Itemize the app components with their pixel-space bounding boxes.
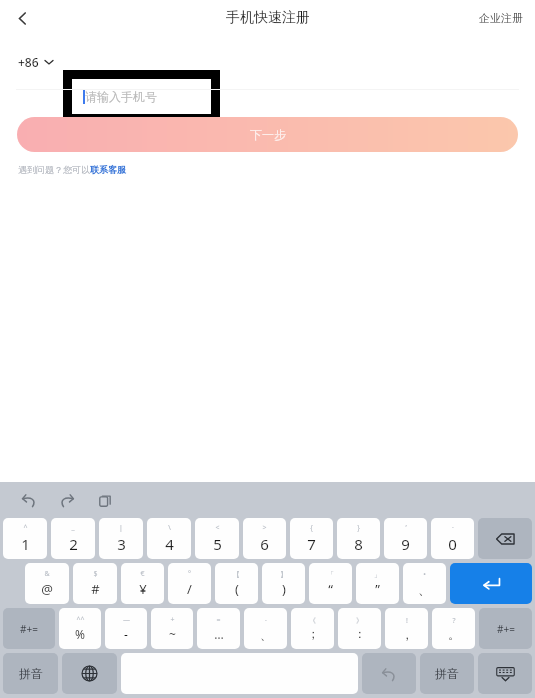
button[interactable]: 「 — [309, 563, 352, 604]
staticText: 7 — [307, 534, 316, 554]
button[interactable]: +86 — [14, 48, 58, 76]
staticText: — — [123, 615, 130, 625]
button[interactable]: ^ — [3, 518, 47, 559]
staticText: \ — [168, 523, 171, 533]
button[interactable]: • — [403, 563, 446, 604]
button[interactable]: ^^ — [59, 608, 101, 649]
button[interactable]: Undo — [14, 485, 44, 515]
button[interactable]: 下一步 — [17, 117, 518, 152]
button[interactable]: { — [290, 518, 333, 559]
button[interactable]: 【 — [215, 563, 258, 604]
button[interactable]: 拼音 — [3, 653, 58, 694]
staticText: 企业注册 — [479, 11, 523, 25]
staticText: #+= — [497, 622, 515, 636]
staticText: 、 — [260, 627, 272, 642]
staticText: 「 — [327, 570, 334, 579]
staticText: & — [44, 569, 50, 579]
button[interactable]: _ — [51, 518, 95, 559]
staticText: 下一步 — [250, 127, 286, 142]
staticText: } — [357, 523, 360, 533]
staticText: 请输入手机号 — [85, 89, 157, 104]
staticText: ! — [406, 616, 408, 626]
button[interactable]: Backspace — [478, 518, 532, 559]
staticText: 联系客服 — [90, 164, 126, 175]
staticText: ； — [307, 626, 319, 641]
staticText: = — [216, 615, 221, 625]
button[interactable]: & — [25, 563, 69, 604]
button[interactable]: 《 — [291, 608, 334, 649]
button[interactable]: ° — [168, 563, 211, 604]
button[interactable]: Switch language — [62, 653, 117, 694]
staticText: < — [215, 523, 220, 533]
staticText: ^^ — [76, 615, 85, 625]
staticText: 0 — [448, 534, 457, 554]
staticText: 2 — [69, 534, 78, 554]
staticText: 9 — [401, 534, 410, 554]
staticText: +86 — [18, 54, 39, 70]
staticText: 」 — [374, 570, 381, 579]
button[interactable]: · — [244, 608, 287, 649]
staticText: { — [310, 523, 313, 533]
button[interactable]: #+= — [479, 608, 532, 649]
staticText: $ — [93, 569, 98, 579]
button[interactable]: Undo — [362, 653, 416, 694]
staticText: … — [214, 626, 224, 642]
button[interactable]: $ — [73, 563, 117, 604]
staticText: 》 — [356, 616, 363, 625]
button[interactable]: · — [431, 518, 474, 559]
staticText: “ — [328, 580, 333, 598]
button[interactable]: € — [121, 563, 164, 604]
staticText: ” — [375, 580, 380, 598]
button[interactable]: 企业注册 — [475, 5, 527, 31]
button[interactable]: < — [195, 518, 239, 559]
button[interactable]: ! — [385, 608, 428, 649]
button[interactable]: | — [99, 518, 143, 559]
button[interactable]: + — [151, 608, 193, 649]
staticText: 4 — [165, 534, 174, 554]
staticText: + — [170, 615, 175, 625]
button[interactable]: 】 — [262, 563, 305, 604]
button[interactable]: ’ — [384, 518, 427, 559]
staticText: 拼音 — [435, 666, 459, 681]
staticText: 1 — [21, 534, 30, 554]
button[interactable]: ? — [432, 608, 475, 649]
button[interactable]: 请输入手机号 — [72, 79, 211, 114]
staticText: 。 — [448, 627, 460, 642]
staticText: 、 — [418, 581, 431, 597]
button[interactable]: 》 — [338, 608, 381, 649]
staticText: 8 — [354, 534, 363, 554]
button[interactable]: 联系客服 — [90, 164, 126, 175]
staticText: 遇到问题？您可以 — [18, 164, 90, 175]
staticText: 拼音 — [19, 666, 43, 681]
button[interactable]: Enter — [450, 563, 532, 604]
staticText: @ — [41, 580, 53, 598]
button[interactable]: > — [243, 518, 286, 559]
button[interactable]: 拼音 — [420, 653, 474, 694]
staticText: 《 — [309, 616, 316, 625]
staticText: ： — [354, 626, 366, 641]
button[interactable]: } — [337, 518, 380, 559]
staticText: ^ — [23, 523, 28, 533]
staticText: % — [75, 626, 85, 642]
button[interactable]: #+= — [3, 608, 55, 649]
staticText: · — [452, 523, 454, 533]
staticText: 5 — [213, 534, 222, 554]
staticText: 手机快速注册 — [226, 9, 310, 27]
button[interactable]: — — [105, 608, 147, 649]
button[interactable]: = — [197, 608, 240, 649]
button[interactable]: 」 — [356, 563, 399, 604]
button[interactable]: \ — [147, 518, 191, 559]
staticText: ~ — [169, 626, 176, 642]
staticText: 6 — [260, 534, 269, 554]
button[interactable]: Hide keyboard — [478, 653, 532, 694]
staticText: ( — [235, 580, 239, 598]
button[interactable]: Redo — [52, 485, 82, 515]
staticText: | — [119, 523, 123, 533]
staticText: • — [423, 570, 426, 580]
button[interactable]: Clipboard — [90, 485, 120, 515]
staticText: > — [262, 523, 267, 533]
staticText: 【 — [233, 570, 240, 579]
button[interactable]: Back — [6, 2, 38, 34]
staticText: ° — [188, 569, 191, 579]
